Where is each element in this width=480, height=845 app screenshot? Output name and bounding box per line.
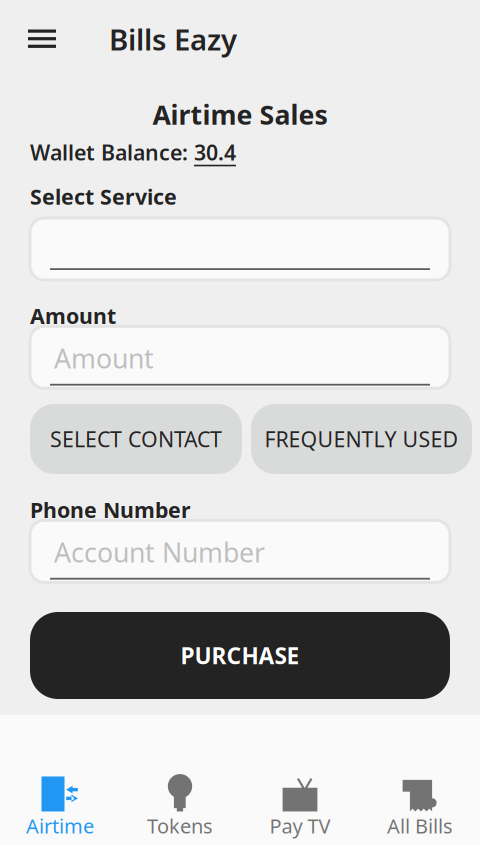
button[interactable]: Pay TV <box>240 715 360 845</box>
staticText: 30.4 <box>194 138 236 166</box>
staticText: Phone Number <box>30 496 191 524</box>
button[interactable]: PURCHASE <box>30 612 450 699</box>
staticText: Airtime <box>26 812 94 839</box>
staticText: PURCHASE <box>180 640 299 670</box>
staticText: Airtime Sales <box>152 97 327 132</box>
staticText: All Bills <box>387 812 453 839</box>
button[interactable]: Menu <box>0 17 84 60</box>
staticText: Tokens <box>147 812 213 839</box>
staticText: Amount <box>54 340 154 376</box>
button[interactable]: Tokens <box>120 715 240 845</box>
button[interactable]: All Bills <box>360 715 480 845</box>
button[interactable]: FREQUENTLY USED <box>251 404 472 474</box>
staticText: Pay TV <box>269 812 330 839</box>
staticText: Amount <box>30 302 116 330</box>
staticText: Wallet Balance: <box>30 138 194 166</box>
staticText: Select Service <box>30 182 177 211</box>
button[interactable]: SELECT CONTACT <box>30 404 242 474</box>
staticText: Bills Eazy <box>109 19 237 58</box>
button[interactable]: Airtime <box>0 715 120 845</box>
staticText: FREQUENTLY USED <box>264 425 458 453</box>
staticText: Account Number <box>54 534 265 570</box>
staticText: SELECT CONTACT <box>50 425 222 453</box>
